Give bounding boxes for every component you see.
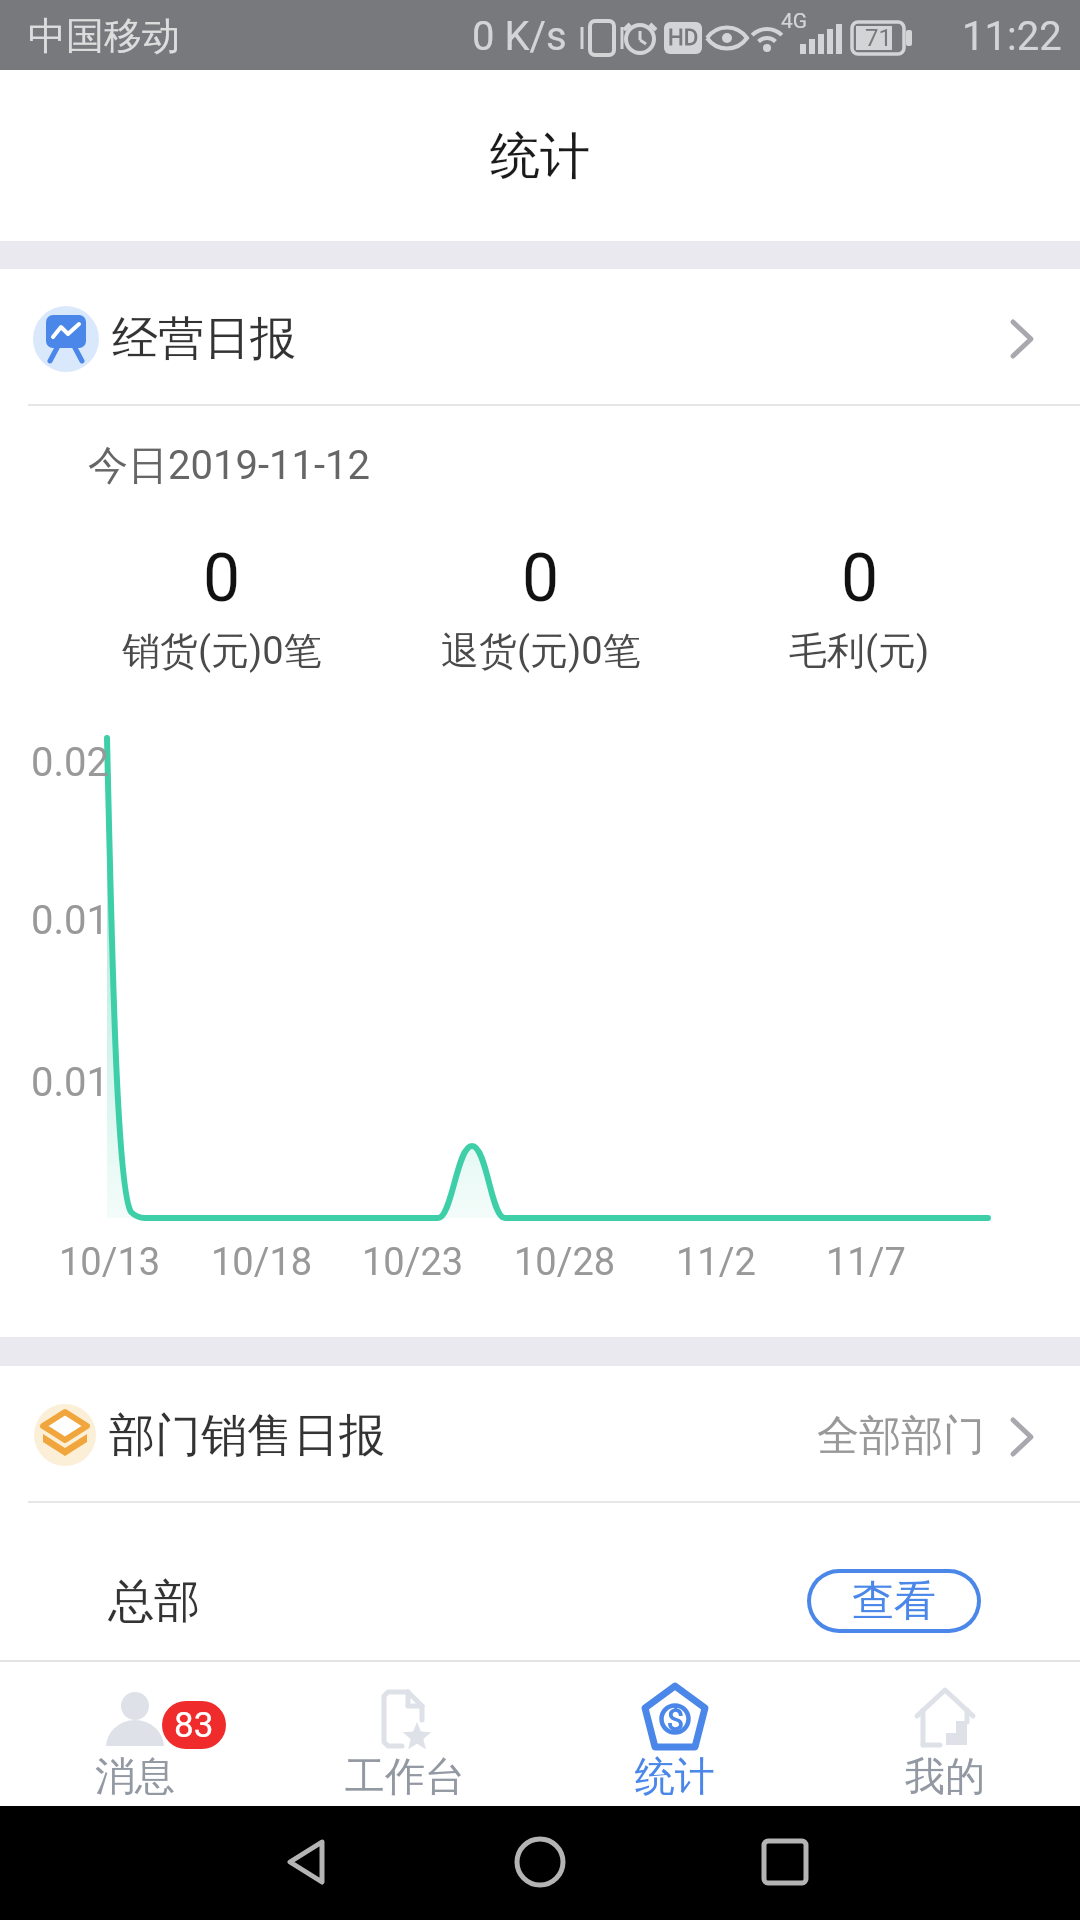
staticText: $	[667, 1702, 684, 1737]
staticText: 统计	[490, 125, 590, 188]
staticText: 10/13	[59, 1240, 161, 1285]
staticText: 今日2019-11-12	[88, 440, 370, 490]
staticText: 查看	[852, 1575, 936, 1628]
staticText: 消息	[95, 1751, 175, 1801]
staticText: 0	[203, 540, 241, 617]
staticText: 退货(元)0笔	[441, 627, 641, 675]
button[interactable]	[250, 1816, 360, 1910]
staticText: 11:22	[962, 13, 1062, 60]
staticText: 4G	[781, 9, 808, 33]
button[interactable]: 查看	[807, 1569, 981, 1633]
staticText: 0.01	[31, 1059, 109, 1106]
staticText: 0	[522, 540, 560, 617]
button[interactable]	[730, 1816, 840, 1910]
staticText: 71	[865, 24, 892, 52]
staticText: 经营日报	[112, 310, 296, 368]
staticText: 统计	[635, 1751, 715, 1801]
staticText: 部门销售日报	[109, 1407, 385, 1465]
staticText: 0.02	[31, 739, 109, 786]
staticText: 中国移动	[28, 12, 180, 60]
button[interactable]	[0, 269, 1080, 405]
staticText: 10/18	[211, 1240, 313, 1285]
button[interactable]	[485, 1816, 595, 1910]
staticText: 11/7	[826, 1240, 906, 1285]
button[interactable]	[0, 1366, 1080, 1502]
staticText: HD	[668, 25, 699, 51]
staticText: 我的	[905, 1751, 985, 1801]
staticText: 10/28	[514, 1240, 616, 1285]
staticText: 总部	[108, 1573, 200, 1631]
staticText: 全部部门	[817, 1410, 985, 1463]
staticText: 工作台	[345, 1751, 465, 1801]
button[interactable]	[810, 1663, 1080, 1806]
staticText: 11/2	[676, 1240, 756, 1285]
staticText: 毛利(元)	[789, 627, 930, 675]
staticText: 10/23	[362, 1240, 464, 1285]
staticText: 83	[174, 1705, 214, 1746]
staticText: 0.01	[31, 897, 109, 944]
button[interactable]	[270, 1663, 540, 1806]
button[interactable]	[540, 1663, 810, 1806]
button[interactable]	[0, 1502, 1080, 1660]
staticText: 0	[841, 540, 879, 617]
staticText: 0 K/s	[472, 13, 567, 60]
staticText: 销货(元)0笔	[122, 627, 322, 675]
button[interactable]	[0, 1663, 270, 1806]
